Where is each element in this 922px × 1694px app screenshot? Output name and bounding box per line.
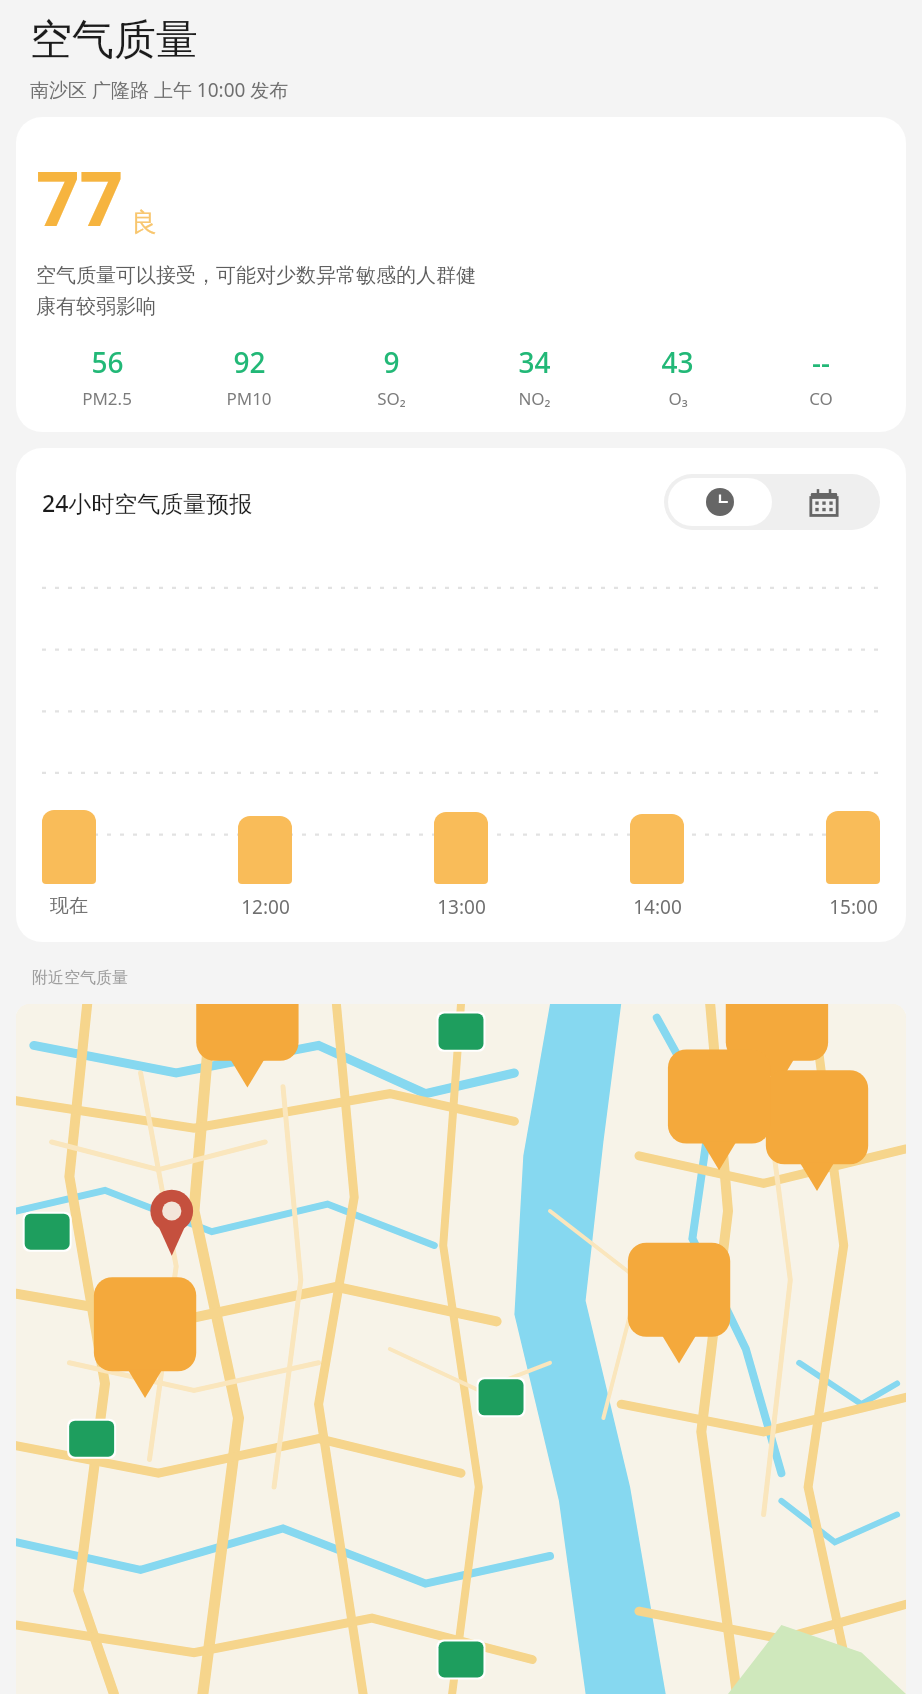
staticText: PM2.5	[82, 387, 132, 410]
staticText: 56	[91, 343, 124, 381]
staticText: 附近空气质量	[32, 968, 128, 988]
staticText: 现在	[50, 894, 88, 918]
staticText: 77	[36, 145, 123, 249]
staticText: 24小时空气质量预报	[42, 487, 253, 518]
staticText: PM10	[226, 387, 272, 410]
button[interactable]: 77	[16, 117, 906, 432]
staticText: 9	[383, 343, 400, 381]
staticText: 15:00	[829, 894, 878, 920]
staticText: --	[812, 343, 830, 381]
staticText: 34	[518, 343, 551, 381]
staticText: 空气质量可以接受，可能对少数异常敏感的人群健 康有较弱影响	[36, 263, 476, 319]
staticText: 92	[233, 343, 266, 381]
button[interactable]: Nearby air quality map	[16, 1004, 906, 1694]
staticText: 良	[131, 206, 157, 239]
staticText: 14:00	[633, 894, 682, 920]
staticText: CO	[809, 387, 833, 410]
staticText: NO₂	[518, 387, 551, 410]
staticText: 空气质量	[30, 14, 198, 67]
staticText: 12:00	[241, 894, 290, 920]
button[interactable]: Hourly forecast	[668, 478, 772, 526]
staticText: O₃	[668, 387, 688, 410]
button[interactable]: Daily forecast	[772, 478, 876, 526]
staticText: SO₂	[377, 387, 406, 410]
staticText: 南沙区 广隆路 上午 10:00 发布	[30, 77, 289, 103]
staticText: 43	[661, 343, 694, 381]
staticText: 13:00	[437, 894, 486, 920]
